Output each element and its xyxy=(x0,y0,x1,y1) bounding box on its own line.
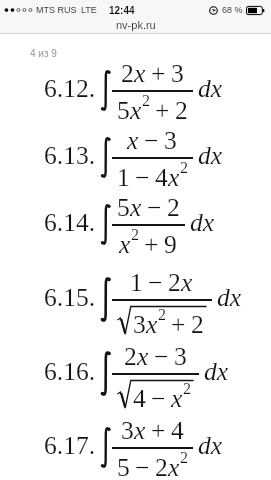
staticText: + xyxy=(171,310,186,338)
staticText: 6.14. xyxy=(44,208,95,236)
staticText: 1 xyxy=(117,163,130,191)
staticText: 2 xyxy=(124,342,137,370)
staticText: − xyxy=(151,384,166,412)
staticText: x xyxy=(181,268,193,296)
staticText: x xyxy=(130,193,142,221)
staticText: 3 xyxy=(164,126,177,154)
staticText: dx xyxy=(198,431,223,459)
staticText: 3 xyxy=(121,416,134,444)
staticText: 2 xyxy=(191,310,204,338)
staticText: 6.17. xyxy=(44,431,95,459)
staticText: 2 xyxy=(175,96,188,124)
staticText: 2 xyxy=(121,59,134,87)
staticText: dx xyxy=(217,283,242,311)
staticText: x xyxy=(137,342,149,370)
staticText: 2 xyxy=(168,268,181,296)
staticText: + xyxy=(155,96,170,124)
staticText: 4 xyxy=(155,163,168,191)
staticText: 6.12. xyxy=(44,74,95,102)
staticText: 3 xyxy=(174,342,187,370)
staticText: 68 % xyxy=(222,5,243,15)
staticText: 6.13. xyxy=(44,141,95,169)
staticText: 6.15. xyxy=(44,283,95,311)
staticText: x xyxy=(171,384,183,412)
staticText: MTS RUS xyxy=(36,5,77,15)
staticText: 5 xyxy=(117,193,130,221)
staticText: dx xyxy=(190,208,215,236)
staticText: dx xyxy=(204,357,229,385)
staticText: − xyxy=(147,193,162,221)
staticText: − xyxy=(154,342,169,370)
staticText: 5 xyxy=(117,453,130,480)
other: Location services xyxy=(209,6,218,15)
staticText: x xyxy=(130,96,142,124)
staticText: − xyxy=(144,126,159,154)
staticText: x xyxy=(119,230,131,258)
staticText: 4 xyxy=(133,384,146,412)
staticText: 2 xyxy=(183,380,191,398)
staticText: LTE xyxy=(81,5,97,15)
staticText: nv-pk.ru xyxy=(116,19,156,31)
staticText: x xyxy=(168,163,180,191)
staticText: − xyxy=(148,268,163,296)
staticText: x xyxy=(134,416,146,444)
other: Battery 68 percent xyxy=(246,6,265,15)
staticText: x xyxy=(168,453,180,480)
staticText: 2 xyxy=(131,226,139,244)
staticText: 4 xyxy=(171,416,184,444)
staticText: 12:44 xyxy=(109,5,135,16)
staticText: 2 xyxy=(180,449,188,467)
staticText: 3 xyxy=(171,59,184,87)
staticText: 4 из 9 xyxy=(30,48,57,59)
staticText: 2 xyxy=(167,193,180,221)
staticText: dx xyxy=(198,141,223,169)
staticText: 2 xyxy=(158,306,166,324)
staticText: 5 xyxy=(117,96,130,124)
staticText: 3 xyxy=(133,310,146,338)
staticText: + xyxy=(151,59,166,87)
staticText: dx xyxy=(198,74,223,102)
staticText: + xyxy=(151,416,166,444)
staticText: x xyxy=(146,310,158,338)
staticText: 9 xyxy=(164,230,177,258)
other: Signal strength xyxy=(4,6,33,14)
staticText: 1 xyxy=(130,268,143,296)
staticText: + xyxy=(144,230,159,258)
staticText: x xyxy=(134,59,146,87)
staticText: 2 xyxy=(142,92,150,110)
staticText: − xyxy=(135,163,150,191)
staticText: 2 xyxy=(155,453,168,480)
staticText: 2 xyxy=(180,159,188,177)
staticText: − xyxy=(135,453,150,480)
button[interactable]: nv-pk.ru xyxy=(0,20,271,33)
staticText: 6.16. xyxy=(44,357,95,385)
staticText: x xyxy=(127,126,139,154)
